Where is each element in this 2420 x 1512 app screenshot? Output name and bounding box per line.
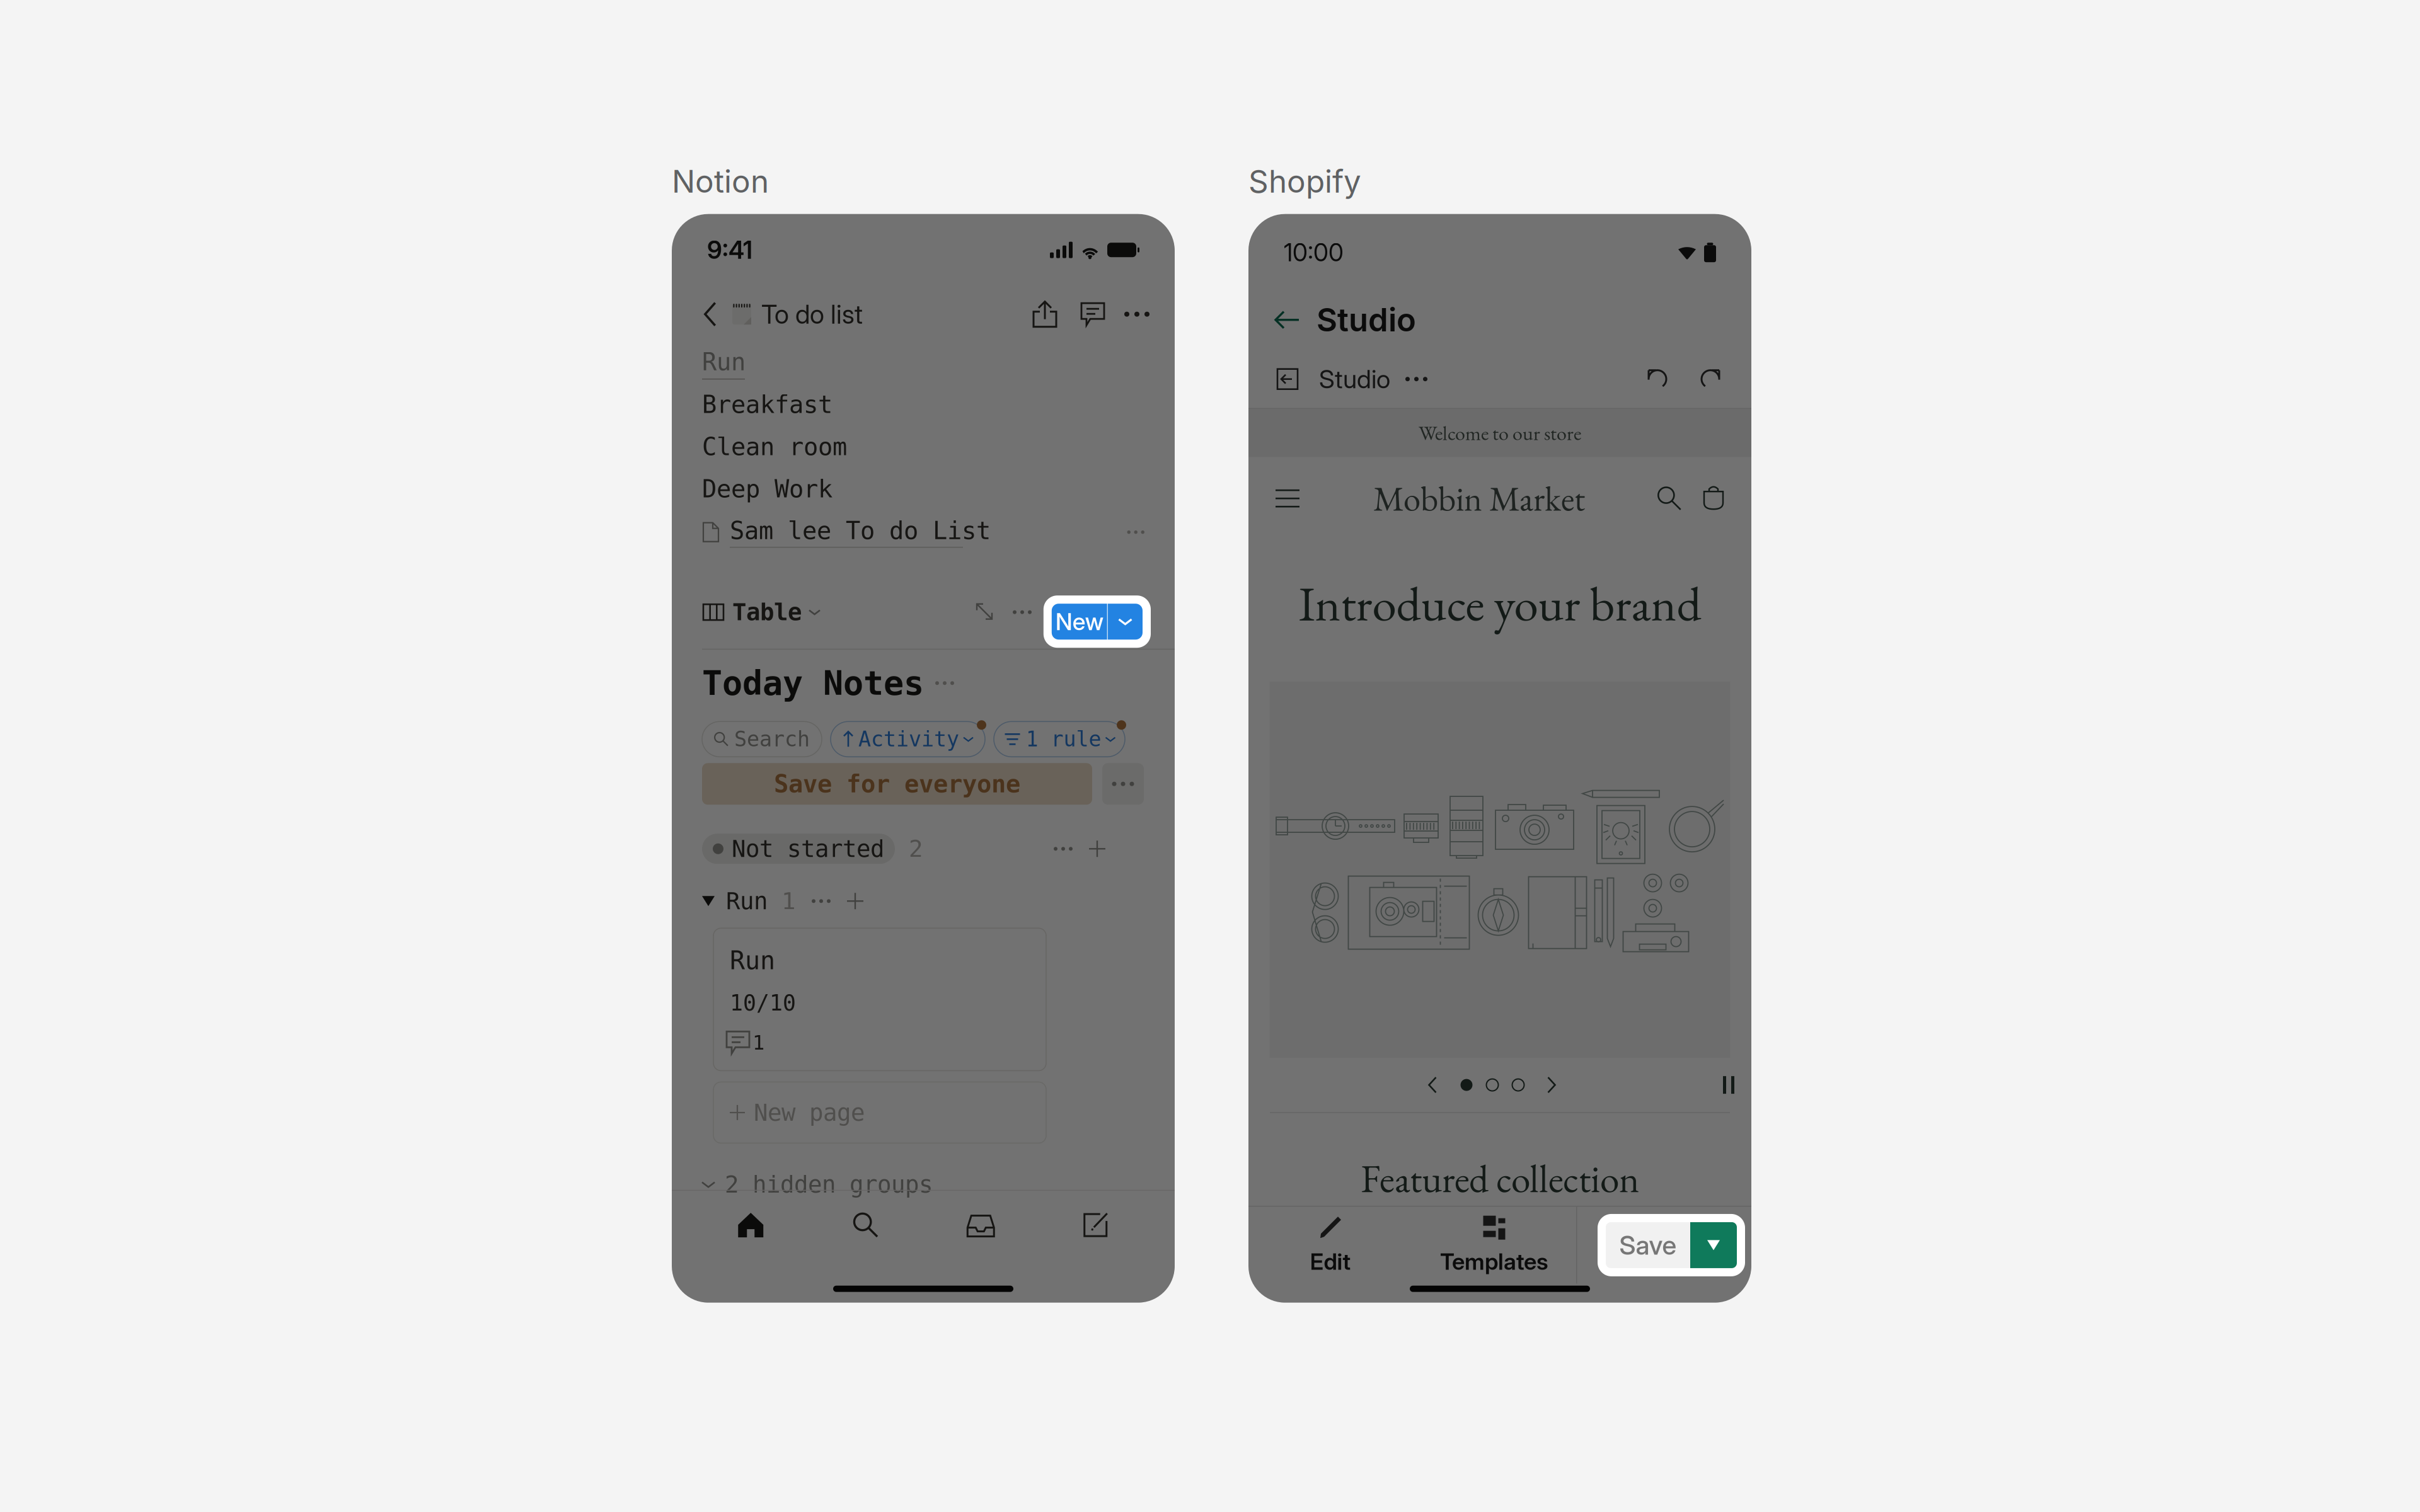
staticText: Sam lee To do List xyxy=(730,517,991,545)
button[interactable]: Back xyxy=(692,297,726,331)
button[interactable]: Banner options xyxy=(1102,763,1144,805)
button[interactable]: Expand xyxy=(969,590,1001,634)
staticText: 2 xyxy=(909,835,923,863)
staticText: Today Notes xyxy=(702,664,924,703)
button[interactable]: New xyxy=(1043,595,1151,648)
staticText: Run xyxy=(730,946,775,975)
button[interactable]: Edit xyxy=(1248,1207,1412,1284)
button[interactable]: 1 rule xyxy=(994,722,1125,757)
button[interactable]: Menu xyxy=(1270,480,1305,517)
staticText: Table xyxy=(732,598,802,626)
staticText: 9:41 xyxy=(707,235,752,265)
staticText: 1 xyxy=(781,887,795,915)
staticText: Run xyxy=(702,348,746,376)
button[interactable]: Exit xyxy=(1271,361,1304,397)
staticText: Save xyxy=(1619,1229,1677,1261)
button[interactable]: Inbox xyxy=(923,1191,1038,1259)
button[interactable]: Cart xyxy=(1697,480,1730,517)
button[interactable]: Home xyxy=(693,1191,808,1259)
staticText: New page xyxy=(754,1099,865,1126)
staticText: Edit xyxy=(1310,1248,1351,1275)
button[interactable]: Pause xyxy=(1715,1070,1743,1100)
button[interactable]: Share xyxy=(1026,295,1064,333)
staticText: 1 rule xyxy=(1026,727,1101,751)
staticText: Welcome to our store xyxy=(1419,420,1581,446)
button[interactable]: Studio xyxy=(1319,361,1427,397)
staticText: New xyxy=(1055,607,1103,636)
button[interactable]: Next slide xyxy=(1539,1070,1564,1100)
button[interactable]: New page xyxy=(713,1082,1046,1143)
staticText: 2 hidden groups xyxy=(725,1171,933,1198)
button[interactable]: Comments xyxy=(1074,295,1112,333)
staticText: Featured collection xyxy=(1361,1153,1639,1204)
button[interactable]: New note xyxy=(1038,1191,1153,1259)
button[interactable]: Undo xyxy=(1639,361,1676,397)
staticText: Notion xyxy=(672,163,769,200)
staticText: Clean room xyxy=(702,433,847,461)
staticText: Shopify xyxy=(1248,163,1361,200)
staticText: Introduce your brand xyxy=(1299,572,1701,635)
button[interactable]: Search xyxy=(702,722,822,757)
button[interactable]: Activity xyxy=(831,722,985,757)
button[interactable]: Save for everyone xyxy=(702,763,1092,805)
button[interactable]: Search xyxy=(808,1191,923,1259)
staticText: 1 xyxy=(752,1031,764,1054)
button[interactable]: Back xyxy=(1267,300,1308,340)
button[interactable]: Search store xyxy=(1653,480,1686,517)
button[interactable]: Database options xyxy=(1008,590,1036,634)
staticText: Not started xyxy=(732,835,884,863)
staticText: Templates xyxy=(1440,1248,1548,1275)
button[interactable]: Previous slide xyxy=(1420,1070,1445,1100)
button[interactable]: More options xyxy=(1122,295,1152,333)
button[interactable]: Table xyxy=(702,590,820,634)
staticText: Studio xyxy=(1317,301,1416,339)
staticText: 10/10 xyxy=(730,990,796,1016)
staticText: Search xyxy=(734,727,810,751)
staticText: 10:00 xyxy=(1284,238,1344,267)
button[interactable]: Templates xyxy=(1412,1207,1576,1284)
button[interactable]: Save xyxy=(1598,1214,1745,1276)
staticText: Save for everyone xyxy=(774,770,1020,798)
staticText: Breakfast xyxy=(702,390,833,419)
staticText: To do list xyxy=(761,298,863,330)
staticText: Run xyxy=(726,887,768,915)
staticText: Studio xyxy=(1319,364,1390,394)
staticText: Mobbin Market xyxy=(1373,476,1585,521)
staticText: Activity xyxy=(858,727,959,751)
staticText: Deep Work xyxy=(702,475,833,503)
button[interactable]: Redo xyxy=(1692,361,1729,397)
